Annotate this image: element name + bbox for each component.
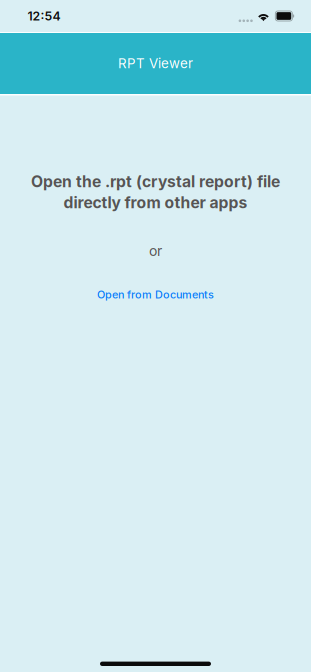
staticText: Open the .rpt (crystal report) file [31, 172, 280, 191]
staticText: directly from other apps [63, 193, 247, 212]
staticText: Open from Documents [97, 288, 214, 301]
staticText: or [149, 242, 162, 259]
staticText: 12:54 [27, 9, 60, 23]
button[interactable]: Open from Documents [83, 280, 228, 309]
staticText: RPT Viewer [118, 55, 193, 71]
